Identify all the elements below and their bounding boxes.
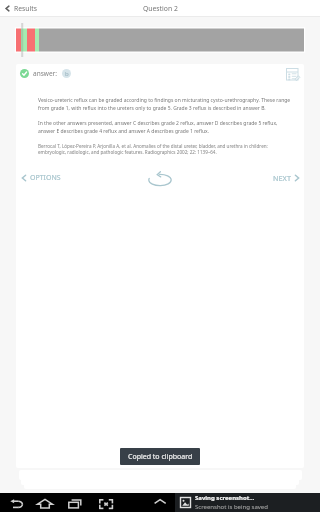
button[interactable]: Screenshot [92, 493, 120, 512]
staticText: Vesico-ureteric reflux can be graded acc… [38, 97, 292, 112]
staticText: answer: [33, 69, 57, 78]
button[interactable]: OPTIONS [16, 169, 67, 187]
staticText: Screenshot is being saved [195, 503, 268, 511]
staticText: b [65, 70, 69, 78]
staticText: Question 2 [143, 4, 178, 13]
staticText: OPTIONS [30, 173, 61, 183]
staticText: In the other answers presented, answer C… [38, 120, 292, 135]
button[interactable]: NEXT [267, 169, 304, 187]
button[interactable]: Saving screenshot… [175, 493, 320, 512]
button[interactable]: Back [2, 493, 29, 512]
button[interactable]: Results [0, 2, 43, 15]
button[interactable]: Recents [61, 493, 89, 512]
button[interactable]: Home [30, 493, 60, 512]
button[interactable]: Notes [284, 66, 300, 82]
staticText: Saving screenshot… [195, 494, 255, 502]
staticText: NEXT [273, 173, 291, 183]
staticText: Copied to clipboard [128, 452, 193, 462]
staticText: Berrocal T, López-Pereira P, Arjonilla A… [38, 143, 292, 155]
staticText: Results [14, 4, 37, 13]
button[interactable]: Expand notifications [147, 493, 173, 512]
button[interactable]: Replay [147, 170, 173, 190]
